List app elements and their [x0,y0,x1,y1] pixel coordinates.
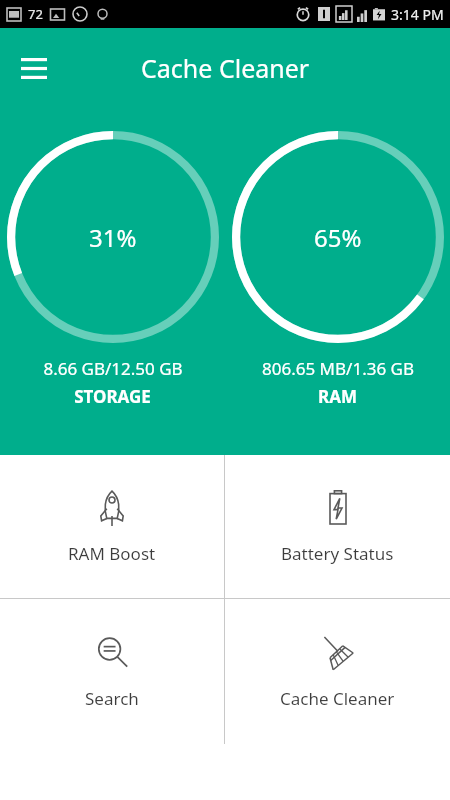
staticText: Battery Status [281,542,394,565]
staticText: RAM [318,385,357,408]
button[interactable]: 65% [225,108,450,455]
staticText: 31% [89,221,137,254]
button[interactable]: Search [0,599,224,744]
staticText: 806.65 MB/1.36 GB [262,357,414,380]
staticText: 8.66 GB/12.50 GB [43,357,183,380]
staticText: Cache Cleaner [280,687,395,710]
button[interactable]: RAM Boost [0,455,224,598]
staticText: 3:14 PM [391,5,444,24]
button[interactable]: 31% [0,108,225,455]
button[interactable]: Battery Status [225,455,450,598]
button[interactable]: Open navigation menu [10,44,58,92]
staticText: RAM Boost [68,542,156,565]
staticText: STORAGE [74,385,151,408]
staticText: Search [85,687,139,710]
staticText: Cache Cleaner [141,51,310,85]
staticText: 65% [314,221,362,254]
staticText: 72 [28,5,43,23]
button[interactable]: Cache Cleaner [225,599,450,744]
